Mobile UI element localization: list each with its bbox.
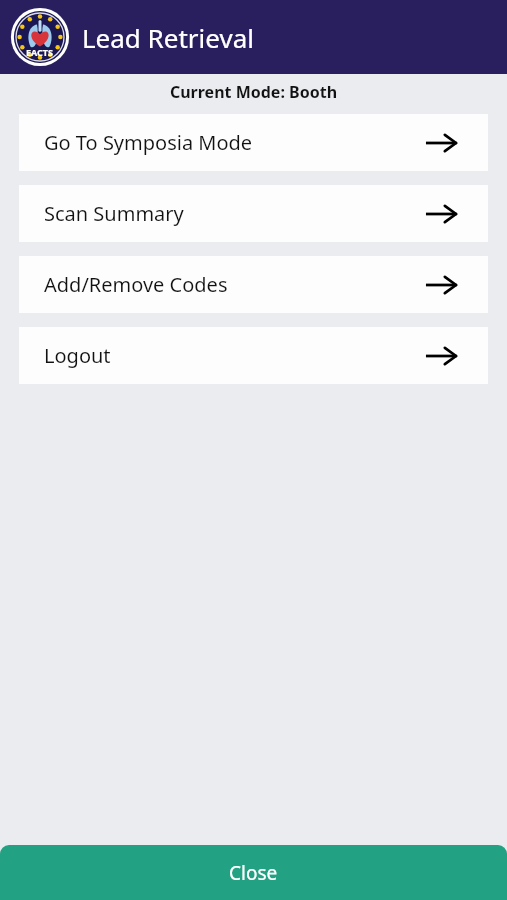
staticText: Add/Remove Codes	[44, 271, 228, 298]
staticText: Logout	[44, 342, 111, 369]
button[interactable]: Go To Symposia Mode	[19, 114, 488, 171]
other: EACTS logo	[10, 7, 70, 67]
staticText: Current Mode: Booth	[0, 81, 507, 103]
button[interactable]: Add/Remove Codes	[19, 256, 488, 313]
staticText: EACTS	[26, 46, 54, 58]
staticText: Close	[229, 860, 278, 886]
button[interactable]: Close	[0, 845, 507, 900]
other: Open Go To Symposia Mode	[425, 131, 457, 155]
button[interactable]: Logout	[19, 327, 488, 384]
other: Open Add/Remove Codes	[425, 273, 457, 297]
staticText: Lead Retrieval	[82, 20, 254, 55]
staticText: Go To Symposia Mode	[44, 129, 253, 156]
other: Open Scan Summary	[425, 202, 457, 226]
other: Open Logout	[425, 344, 457, 368]
staticText: Scan Summary	[44, 200, 184, 227]
button[interactable]: Scan Summary	[19, 185, 488, 242]
